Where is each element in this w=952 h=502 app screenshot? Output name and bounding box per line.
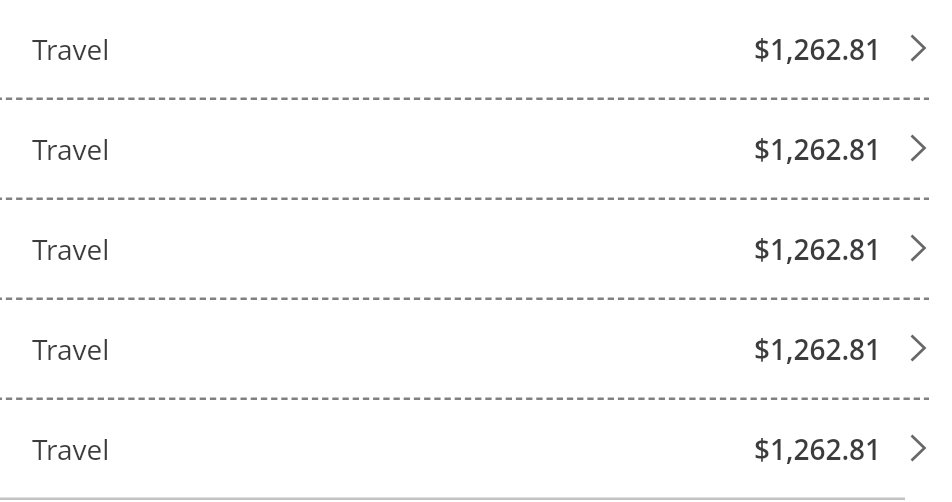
other: Open category details	[910, 433, 926, 465]
other: Open category details	[910, 333, 926, 365]
staticText: Travel	[32, 130, 110, 168]
button[interactable]: Travel	[0, 400, 952, 498]
staticText: $1,262.81	[754, 230, 882, 268]
button[interactable]: Travel	[0, 0, 952, 98]
staticText: $1,262.81	[754, 130, 882, 168]
other: Open category details	[910, 33, 926, 65]
staticText: Travel	[32, 30, 110, 68]
button[interactable]: Travel	[0, 300, 952, 398]
staticText: $1,262.81	[754, 330, 882, 368]
button[interactable]: Travel	[0, 200, 952, 298]
staticText: $1,262.81	[754, 30, 882, 68]
staticText: Travel	[32, 330, 110, 368]
staticText: Travel	[32, 230, 110, 268]
button[interactable]: Travel	[0, 100, 952, 198]
other: Open category details	[910, 133, 926, 165]
other: Open category details	[910, 233, 926, 265]
staticText: $1,262.81	[754, 430, 882, 468]
staticText: Travel	[32, 430, 110, 468]
